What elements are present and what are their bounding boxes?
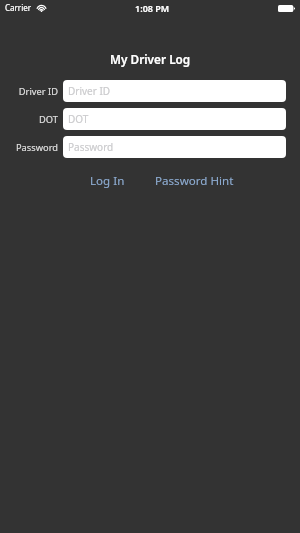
staticText: 1:08 PM: [135, 2, 170, 14]
button[interactable]: Log In: [89, 172, 126, 190]
button[interactable]: Password: [63, 136, 286, 158]
staticText: DOT: [68, 112, 89, 126]
button[interactable]: DOT: [63, 108, 286, 130]
other: Wi-Fi signal: [36, 4, 47, 12]
staticText: Password: [68, 140, 114, 154]
staticText: Password Hint: [155, 173, 234, 189]
staticText: Carrier: [5, 2, 32, 13]
button[interactable]: Password Hint: [154, 172, 235, 190]
staticText: Log In: [90, 173, 125, 189]
staticText: DOT: [39, 113, 58, 126]
button[interactable]: Driver ID: [63, 80, 286, 102]
staticText: Driver ID: [18, 85, 58, 98]
other: Battery full: [278, 5, 295, 12]
staticText: My Driver Log: [110, 51, 191, 67]
staticText: Password: [15, 141, 58, 154]
staticText: Driver ID: [68, 84, 111, 98]
